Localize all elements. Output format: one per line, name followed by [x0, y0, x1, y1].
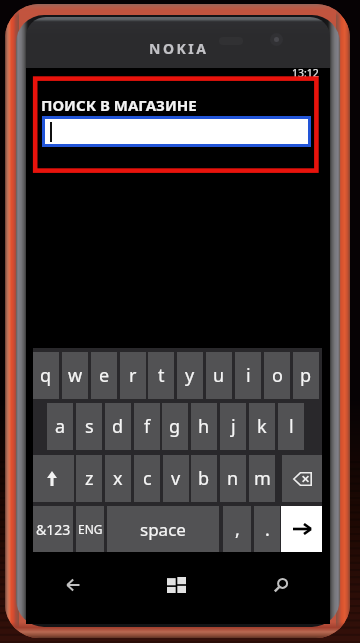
staticText: c	[143, 466, 152, 491]
staticText: g	[169, 414, 181, 439]
staticText: l	[289, 414, 294, 439]
button[interactable]: &123	[33, 506, 73, 552]
button[interactable]: u	[206, 352, 232, 399]
staticText: q	[40, 363, 52, 388]
button[interactable]: .	[254, 506, 280, 552]
button[interactable]: s	[76, 403, 102, 450]
staticText: NOKIA	[149, 39, 209, 58]
button[interactable]: n	[220, 455, 246, 502]
staticText: v	[171, 466, 181, 491]
staticText: space	[140, 518, 186, 541]
button[interactable]: z	[76, 455, 102, 502]
staticText: &123	[36, 520, 71, 539]
staticText: k	[257, 414, 267, 439]
staticText: ENG	[78, 521, 103, 537]
button[interactable]: t	[148, 352, 174, 399]
button[interactable]: b	[191, 455, 217, 502]
staticText: n	[227, 466, 239, 491]
button[interactable]: x	[105, 455, 131, 502]
staticText: d	[112, 414, 124, 439]
button[interactable]: e	[91, 352, 117, 399]
button[interactable]: o	[264, 352, 290, 399]
button[interactable]: y	[177, 352, 203, 399]
staticText: w	[68, 363, 83, 388]
staticText: f	[144, 414, 151, 439]
staticText: e	[99, 363, 110, 388]
button[interactable]: q	[33, 352, 59, 399]
staticText: x	[113, 466, 123, 491]
button[interactable]: space	[107, 506, 219, 552]
button[interactable]: Search	[246, 557, 314, 613]
button[interactable]: f	[134, 403, 160, 450]
staticText: m	[254, 466, 271, 491]
staticText: o	[272, 363, 283, 388]
button[interactable]: i	[235, 352, 261, 399]
staticText: b	[198, 466, 210, 491]
staticText: t	[158, 363, 165, 388]
button[interactable]: Back	[39, 557, 106, 613]
staticText: h	[198, 414, 210, 439]
button[interactable]: g	[162, 403, 188, 450]
staticText: a	[55, 414, 66, 439]
button[interactable]: c	[134, 455, 160, 502]
button[interactable]	[45, 119, 308, 144]
staticText: ,	[235, 517, 240, 542]
button[interactable]: v	[163, 455, 189, 502]
staticText: ПОИСК В МАГАЗИНЕ	[41, 95, 197, 115]
button[interactable]: key	[282, 455, 322, 502]
button[interactable]: ,	[223, 506, 251, 552]
staticText: j	[231, 414, 236, 439]
staticText: s	[85, 414, 94, 439]
staticText: i	[246, 363, 251, 388]
staticText: r	[129, 363, 137, 388]
staticText: z	[85, 466, 94, 491]
button[interactable]: p	[293, 352, 319, 399]
button[interactable]: l	[278, 403, 304, 450]
button[interactable]: key	[33, 455, 74, 502]
button[interactable]: m	[249, 455, 275, 502]
staticText: u	[213, 363, 225, 388]
staticText: p	[300, 363, 312, 388]
button[interactable]: j	[220, 403, 246, 450]
button[interactable]: d	[105, 403, 131, 450]
button[interactable]: w	[62, 352, 88, 399]
button[interactable]: ENG	[76, 506, 104, 552]
staticText: .	[265, 517, 270, 542]
button[interactable]: a	[47, 403, 73, 450]
button[interactable]: h	[191, 403, 217, 450]
button[interactable]: k	[249, 403, 275, 450]
staticText: y	[185, 363, 195, 388]
button[interactable]: key	[281, 506, 322, 552]
button[interactable]: r	[120, 352, 146, 399]
button[interactable]: Start	[143, 557, 210, 613]
staticText: 13:12	[292, 66, 319, 80]
